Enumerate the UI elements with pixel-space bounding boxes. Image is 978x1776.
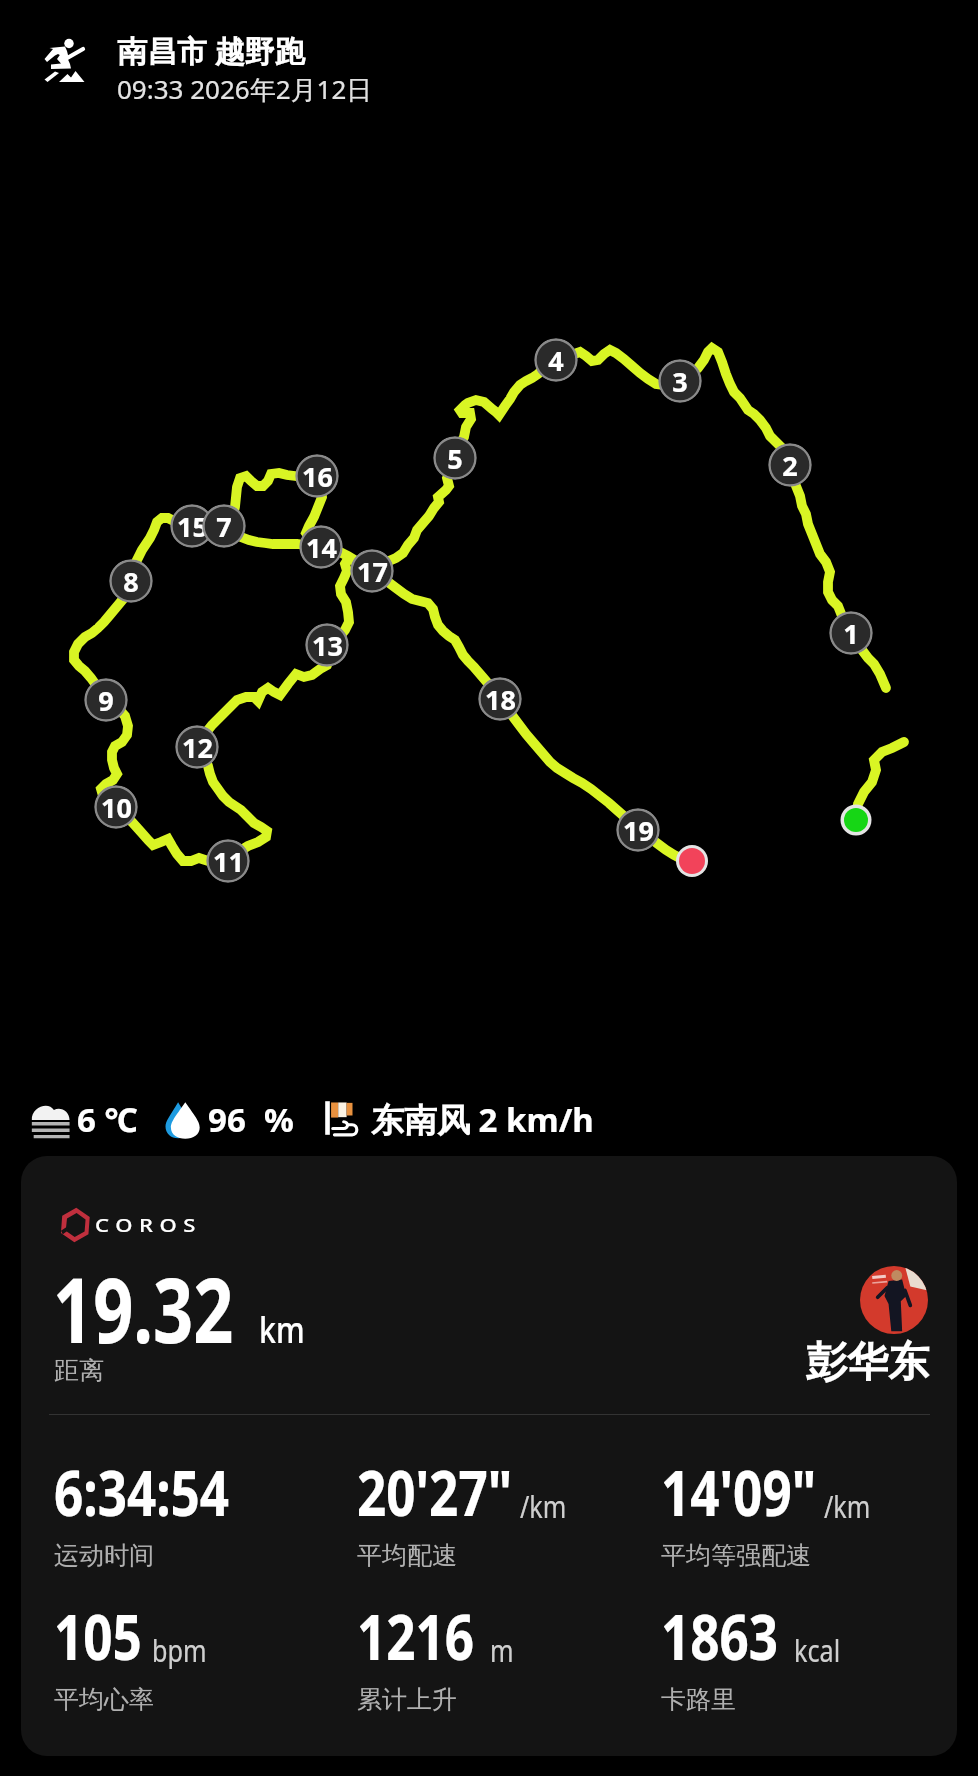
staticText: 19.32 [53,1247,234,1370]
other: Trail running activity [40,32,90,92]
staticText: COROS [95,1213,203,1237]
button[interactable]: 96 [158,1094,293,1148]
staticText: /km [520,1486,567,1527]
button[interactable]: 6 ℃ [26,1094,148,1148]
staticText: 东南风 2 km/h [371,1097,594,1142]
button[interactable]: 1 [829,611,873,655]
staticText: m [490,1630,514,1671]
button[interactable]: 14 [299,525,343,569]
staticText: 13 [312,627,343,664]
button[interactable]: 9 [84,678,128,722]
button[interactable]: 4 [534,338,578,382]
staticText: 累计上升 [357,1684,457,1715]
staticText: % [264,1097,294,1142]
button[interactable]: 16 [295,454,339,498]
staticText: 2 [782,447,798,484]
staticText: bpm [152,1630,207,1671]
button[interactable]: 10 [94,785,138,829]
button[interactable]: 11 [206,839,250,883]
staticText: 17 [357,553,388,590]
staticText: 运动时间 [54,1540,154,1571]
staticText: 1863 [661,1594,778,1678]
staticText: 11 [213,843,244,880]
staticText: 平均心率 [54,1684,154,1715]
staticText: 平均配速 [357,1540,457,1571]
staticText: /km [824,1486,871,1527]
staticText: 14'09" [661,1450,817,1534]
staticText: km [259,1305,305,1354]
button[interactable]: 3 [658,359,702,403]
staticText: 16 [302,458,333,495]
button[interactable]: 5 [433,436,477,480]
staticText: 105 [54,1594,142,1678]
button[interactable]: 13 [305,623,349,667]
staticText: 4 [548,342,564,379]
staticText: 20'27" [357,1450,513,1534]
staticText: 09:33 2026年2月12日 [117,71,373,107]
button[interactable]: 彭华东 [799,1260,957,1390]
staticText: 彭华东 [806,1337,929,1389]
button[interactable]: 2 [768,443,812,487]
button[interactable]: 12 [175,725,219,769]
staticText: 平均等强配速 [661,1540,811,1571]
button[interactable]: 19 [616,808,660,852]
staticText: 19 [623,812,654,849]
button[interactable]: Trail running activity [0,0,978,120]
staticText: kcal [794,1630,840,1671]
staticText: 5 [447,440,463,477]
staticText: 9 [98,682,114,719]
button[interactable]: 17 [350,549,394,593]
staticText: 6:34:54 [54,1450,230,1534]
staticText: 距离 [54,1355,104,1386]
button[interactable]: 18 [478,677,522,721]
staticText: 卡路里 [661,1684,736,1715]
button[interactable]: 15 [170,504,214,548]
button[interactable]: 8 [109,559,153,603]
staticText: 12 [182,729,213,766]
staticText: 14 [306,529,337,566]
button[interactable]: 东南风 2 km/h [316,1094,601,1148]
staticText: 15 [177,508,208,545]
staticText: 1 [843,615,859,652]
staticText: 8 [123,563,139,600]
staticText: 18 [485,681,516,718]
staticText: 7 [216,508,232,545]
staticText: 3 [672,363,688,400]
staticText: 96 [208,1097,246,1142]
staticText: 1216 [357,1594,474,1678]
staticText: 10 [101,789,132,826]
staticText: 南昌市 越野跑 [117,30,305,71]
staticText: 6 ℃ [77,1097,138,1142]
button[interactable]: 7 [202,504,246,548]
